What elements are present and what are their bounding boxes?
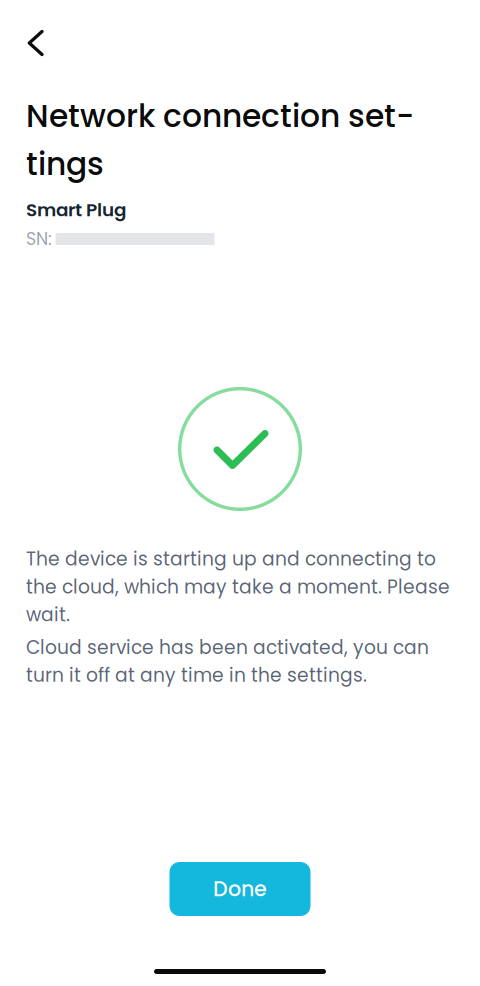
staticText: Network connection set- [26, 94, 414, 138]
staticText: SN: [26, 227, 52, 251]
staticText: The device is starting up and connecting… [26, 546, 450, 628]
button[interactable]: Back [13, 21, 57, 65]
staticText: tings [26, 142, 104, 186]
staticText: Smart Plug [26, 197, 126, 223]
staticText: Done [213, 874, 267, 903]
button[interactable]: Done [169, 862, 310, 916]
staticText: Cloud service has been activated, you ca… [26, 634, 429, 688]
